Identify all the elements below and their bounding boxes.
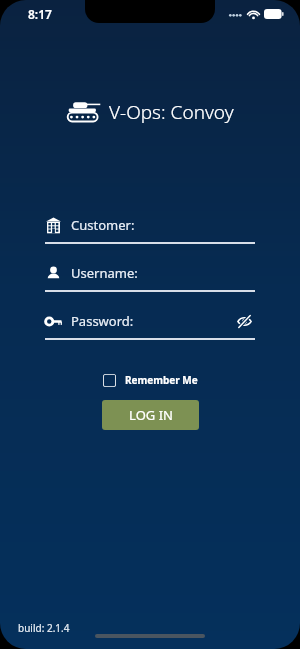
staticText: build: 2.1.4 xyxy=(18,621,70,635)
button[interactable]: Remember Me xyxy=(101,370,200,390)
staticText: LOG IN xyxy=(129,406,173,424)
staticText: Remember Me xyxy=(125,373,198,387)
button[interactable]: Customer: xyxy=(45,210,255,244)
button[interactable]: Password: xyxy=(45,306,255,340)
staticText: V-Ops: Convoy xyxy=(109,99,234,125)
staticText: 8:17 xyxy=(28,6,52,22)
staticText: Username: xyxy=(71,264,138,282)
button[interactable]: Username: xyxy=(45,258,255,292)
button[interactable]: LOG IN xyxy=(102,400,199,430)
button[interactable]: Show password xyxy=(233,310,255,332)
staticText: Password: xyxy=(71,312,134,330)
staticText: Customer: xyxy=(71,216,135,234)
